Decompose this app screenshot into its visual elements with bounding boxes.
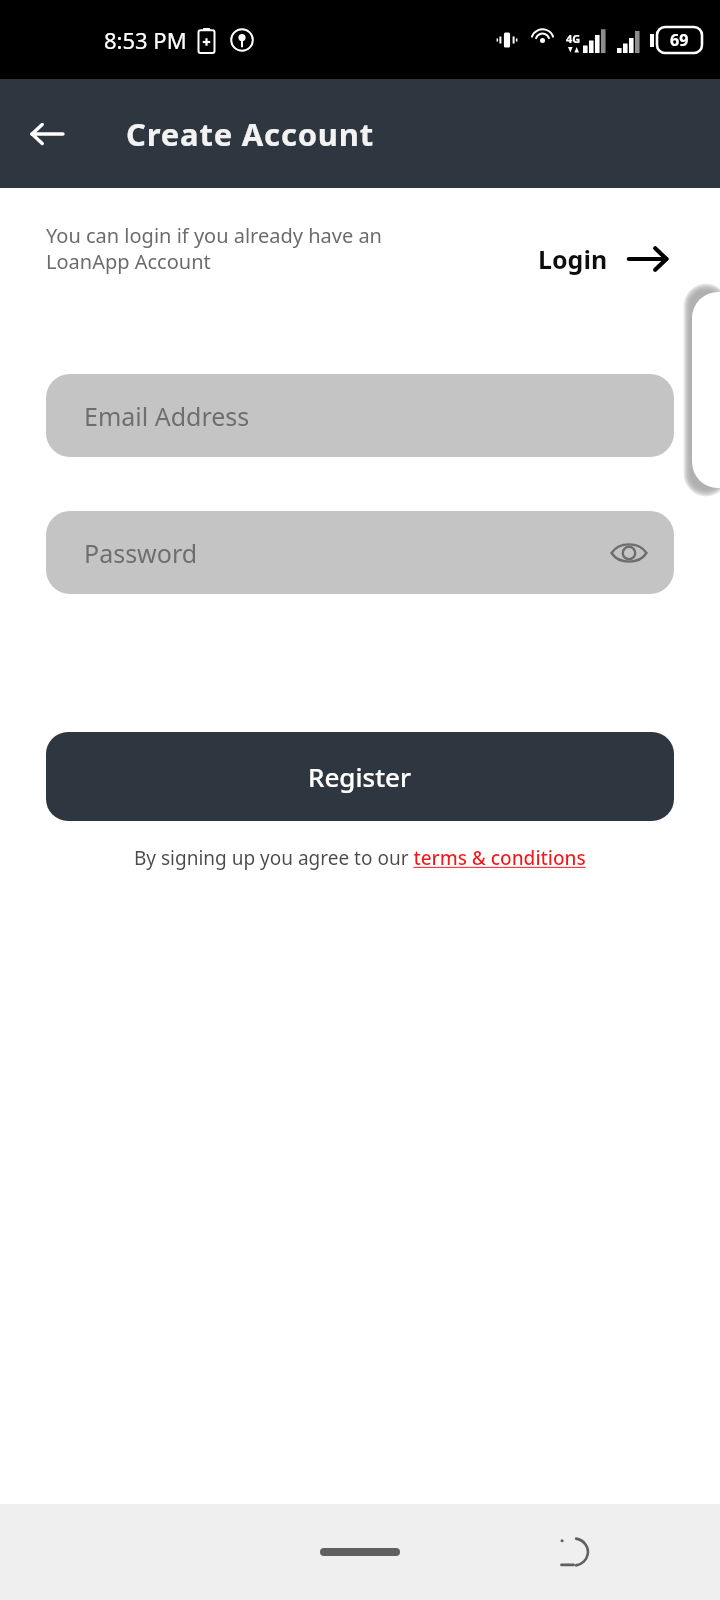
staticText: 69: [670, 29, 689, 51]
button[interactable]: Login: [532, 238, 674, 280]
button[interactable]: Back: [18, 105, 76, 163]
button[interactable]: Password: [46, 511, 674, 594]
button[interactable]: Home: [300, 1528, 420, 1576]
staticText: 4G: [566, 31, 581, 46]
staticText: Password: [84, 536, 198, 570]
staticText: You can login if you already have an Loa…: [46, 222, 382, 274]
staticText: Register: [308, 759, 412, 794]
button[interactable]: Back: [548, 1525, 602, 1579]
staticText: 8:53 PM: [104, 25, 187, 55]
button[interactable]: Register: [46, 732, 674, 821]
button[interactable]: Show password: [602, 526, 656, 580]
staticText: Login: [538, 242, 608, 276]
staticText: Email Address: [84, 399, 250, 433]
button[interactable]: By signing up you agree to our terms & c…: [130, 843, 590, 873]
button[interactable]: Email Address: [46, 374, 674, 457]
staticText: Create Account: [126, 113, 375, 155]
